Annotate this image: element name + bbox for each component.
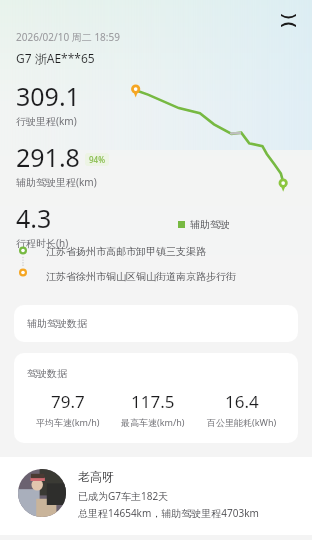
staticText: 辅助驾驶里程(km) xyxy=(16,175,97,189)
staticText: 行驶里程(km) xyxy=(16,114,77,128)
staticText: 辅助驾驶数据 xyxy=(27,317,87,330)
staticText: 94% xyxy=(89,154,105,165)
button[interactable]: 驾驶数据 xyxy=(14,353,298,443)
staticText: 16.4 xyxy=(225,390,259,413)
staticText: 最高车速(km/h) xyxy=(121,416,185,428)
staticText: 驾驶数据 xyxy=(27,367,67,380)
staticText: 辅助驾驶 xyxy=(190,218,230,231)
staticText: 4.3 xyxy=(16,201,52,235)
staticText: 总里程14654km，辅助驾驶里程4703km xyxy=(78,506,259,520)
staticText: G7 浙AE***65 xyxy=(16,50,95,66)
staticText: 2026/02/10 周二 18:59 xyxy=(16,30,120,44)
staticText: 江苏省徐州市铜山区铜山街道南京路步行街 xyxy=(46,270,236,283)
button[interactable]: 老高呀 xyxy=(0,457,312,535)
staticText: 行程时长(h) xyxy=(16,236,69,250)
staticText: 百公里能耗(kWh) xyxy=(207,416,277,428)
staticText: 老高呀 xyxy=(78,469,114,484)
staticText: 79.7 xyxy=(51,390,85,413)
staticText: 江苏省扬州市高邮市卸甲镇三支渠路 xyxy=(46,245,206,258)
staticText: 已成为G7车主182天 xyxy=(78,489,169,503)
button[interactable]: Close xyxy=(272,4,304,36)
staticText: 117.5 xyxy=(131,390,175,413)
button[interactable]: 辅助驾驶数据 xyxy=(14,305,298,342)
staticText: 291.8 xyxy=(16,140,80,174)
staticText: 309.1 xyxy=(16,79,80,113)
staticText: 平均车速(km/h) xyxy=(36,416,100,428)
